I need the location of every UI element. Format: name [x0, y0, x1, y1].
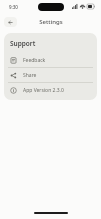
staticText: App Version 2.3.0 [23, 87, 64, 94]
staticText: Share [23, 72, 37, 79]
staticText: Feedback [23, 57, 46, 64]
button[interactable]: App Version 2.3.0 [4, 83, 97, 97]
button[interactable]: Feedback [4, 53, 97, 67]
staticText: Support [10, 39, 36, 48]
staticText: 9:30 [9, 4, 18, 10]
staticText: Settings [39, 18, 63, 26]
button[interactable]: Share [4, 68, 97, 82]
button[interactable]: Back [4, 17, 17, 27]
